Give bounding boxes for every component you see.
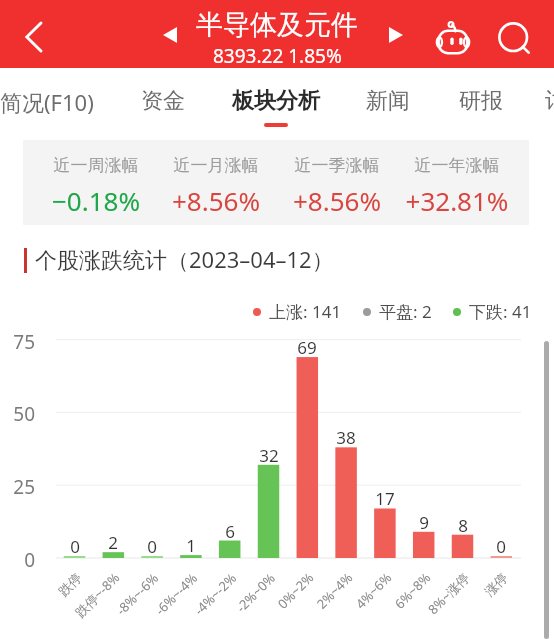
staticText: 半导体及元件 [196, 8, 358, 42]
staticText: 8%~涨停 [424, 569, 473, 618]
button[interactable]: 板块分析 [221, 70, 331, 136]
staticText: 平盘: 2 [379, 300, 432, 323]
staticText: 板块分析 [232, 87, 320, 115]
staticText: 8 [438, 514, 488, 537]
button[interactable]: 讨 [501, 70, 554, 136]
staticText: 75 [0, 329, 35, 355]
staticText: 近一季涨幅 [277, 155, 397, 176]
staticText: 69 [282, 336, 332, 359]
staticText: 下跌: 41 [469, 300, 532, 323]
staticText: −0.18% [31, 183, 161, 218]
staticText: 17 [360, 487, 410, 510]
staticText: -2%~0% [232, 569, 279, 616]
staticText: 新闻 [366, 87, 410, 115]
staticText: 50 [0, 401, 35, 427]
staticText: 简况(F10) [0, 87, 94, 117]
button[interactable]: 简况(F10) [0, 70, 102, 136]
staticText: 2 [88, 531, 138, 554]
staticText: 9 [399, 511, 449, 534]
staticText: 0 [476, 535, 526, 558]
staticText: 2%~4% [312, 569, 356, 612]
button[interactable]: 新闻 [333, 70, 443, 136]
staticText: 近一周涨幅 [36, 155, 156, 176]
staticText: 0 [0, 547, 35, 573]
button[interactable]: Back [8, 13, 58, 61]
staticText: 研报 [459, 87, 503, 115]
staticText: 1 [166, 534, 216, 557]
staticText: -6%~-4% [151, 569, 201, 619]
staticText: 6%~8% [390, 569, 434, 612]
staticText: +8.56% [151, 183, 281, 218]
staticText: -4%~-2% [190, 569, 240, 619]
staticText: +32.81% [392, 183, 522, 218]
staticText: 0%~2% [273, 569, 317, 612]
staticText: 25 [0, 474, 35, 500]
staticText: 38 [321, 426, 371, 449]
button[interactable]: 研报 [426, 70, 536, 136]
staticText: +8.56% [272, 183, 402, 218]
button[interactable]: Next sector [376, 22, 416, 48]
staticText: 跌停 [55, 569, 85, 599]
staticText: 讨 [545, 87, 554, 115]
staticText: 0 [50, 535, 100, 558]
button[interactable]: 资金 [108, 70, 218, 136]
staticText: 近一年涨幅 [397, 155, 517, 176]
staticText: 0 [127, 535, 177, 558]
staticText: 上涨: 141 [269, 300, 342, 323]
staticText: -8%~-6% [112, 569, 162, 619]
button[interactable]: AI assistant [431, 12, 475, 54]
button[interactable]: Search [496, 20, 534, 58]
staticText: 4%~6% [351, 569, 395, 612]
staticText: 跌停~-8% [71, 569, 123, 621]
button[interactable]: Previous sector [150, 22, 190, 48]
staticText: 6 [205, 520, 255, 543]
staticText: 32 [244, 444, 294, 467]
staticText: 涨停 [481, 569, 511, 599]
staticText: 个股涨跌统计（2023–04–12） [35, 244, 334, 274]
staticText: 近一月涨幅 [156, 155, 276, 176]
staticText: 资金 [141, 87, 185, 115]
staticText: 8393.22 1.85% [213, 43, 342, 69]
